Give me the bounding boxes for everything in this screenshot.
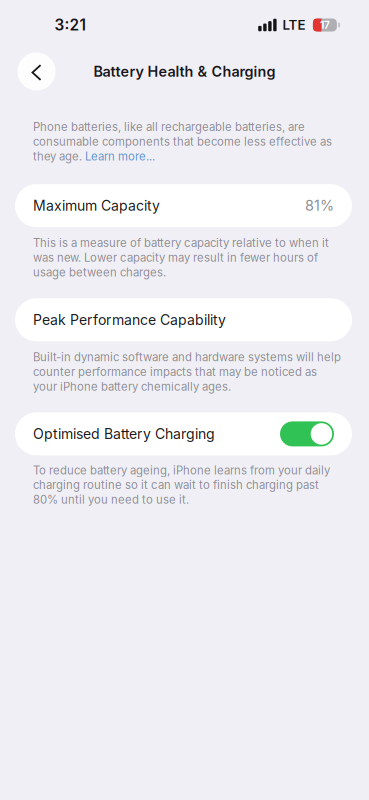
- staticText: 81%: [305, 197, 334, 214]
- staticText: Peak Performance Capability: [33, 311, 226, 328]
- button[interactable]: Back: [17, 52, 55, 90]
- staticText: To reduce battery ageing, iPhone learns …: [33, 463, 330, 506]
- staticText: Phone batteries, like all rechargeable b…: [33, 120, 332, 163]
- staticText: This is a measure of battery capacity re…: [33, 236, 329, 279]
- staticText: LTE: [282, 17, 305, 33]
- button[interactable]: Maximum Capacity: [0, 184, 352, 227]
- button[interactable]: Optimised Battery Charging: [0, 412, 352, 455]
- staticText: 17: [320, 19, 330, 31]
- button[interactable]: Peak Performance Capability: [0, 298, 352, 341]
- staticText: Maximum Capacity: [33, 197, 160, 214]
- staticText: Battery Health & Charging: [93, 63, 275, 80]
- staticText: Built-in dynamic software and hardware s…: [33, 350, 341, 393]
- staticText: Optimised Battery Charging: [33, 425, 215, 442]
- staticText: 3:21: [54, 16, 85, 34]
